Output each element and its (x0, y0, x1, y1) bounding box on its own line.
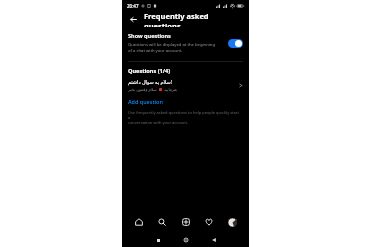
staticText: Questions will be displayed at the begin… (128, 42, 216, 48)
staticText: بفرمایید (164, 87, 178, 92)
button[interactable]: Back (127, 13, 139, 25)
staticText: سلام یه سوال داشتم! (128, 79, 173, 86)
button[interactable]: Show questions (122, 27, 249, 57)
button[interactable]: Search (153, 212, 171, 232)
button[interactable]: Home (130, 212, 148, 232)
staticText: Frequently asked questions (144, 11, 244, 27)
button[interactable]: Home (178, 233, 194, 247)
staticText: Use frequently asked questions to help p… (128, 110, 239, 120)
button[interactable]: Back (206, 233, 222, 247)
button[interactable]: Add question (122, 96, 249, 107)
staticText: Show questions (128, 32, 171, 40)
staticText: of a chat with your account. (128, 48, 183, 54)
button[interactable]: Show questions toggle, on (228, 39, 243, 48)
button[interactable]: Recent apps (150, 233, 166, 247)
staticText: Add question (128, 98, 163, 105)
staticText: 20:47 (127, 3, 139, 9)
staticText: conversation with your account. (128, 120, 189, 125)
button[interactable]: Activity (200, 212, 218, 232)
button[interactable]: سلام یه سوال داشتم! (122, 75, 249, 96)
staticText: سلام وقتتون بخیر (128, 87, 157, 92)
button[interactable]: Create (177, 212, 195, 232)
button[interactable]: Profile (223, 212, 241, 232)
staticText: Questions (1/4) (128, 67, 171, 75)
